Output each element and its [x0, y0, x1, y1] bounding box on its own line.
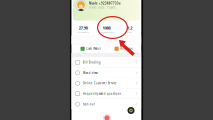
button[interactable]: Cash Wallet — [74, 44, 105, 53]
staticText: Invite code: Pqw9j — [89, 6, 116, 9]
staticText: Team — [128, 31, 132, 33]
staticText: 1.2 — [127, 25, 132, 30]
staticText: Frequently asked questions — [83, 92, 121, 95]
button[interactable]: Frequently asked questions — [71, 89, 141, 99]
button[interactable]: Online Customer Service — [71, 78, 141, 88]
staticText: Bill Binding — [83, 61, 101, 64]
button[interactable]: Customer support — [127, 107, 134, 114]
staticText: Sign out — [83, 102, 95, 106]
staticText: Cash Wallet — [86, 47, 101, 50]
staticText: 27.90 — [79, 25, 88, 30]
staticText: Accumulated earnings — [98, 31, 114, 33]
staticText: Recharge — [120, 47, 133, 50]
staticText: Nicole +923887733x — [89, 2, 121, 5]
button[interactable]: Recharge — [108, 44, 139, 53]
button[interactable]: Mixed draw — [71, 68, 141, 78]
staticText: Mixed draw — [83, 71, 98, 75]
staticText: Current Balance — [77, 31, 89, 33]
button[interactable]: Bill Binding — [71, 57, 141, 67]
staticText: 1088 — [102, 25, 110, 30]
button[interactable]: Sign out — [71, 99, 141, 109]
staticText: Online Customer Service — [83, 81, 117, 85]
